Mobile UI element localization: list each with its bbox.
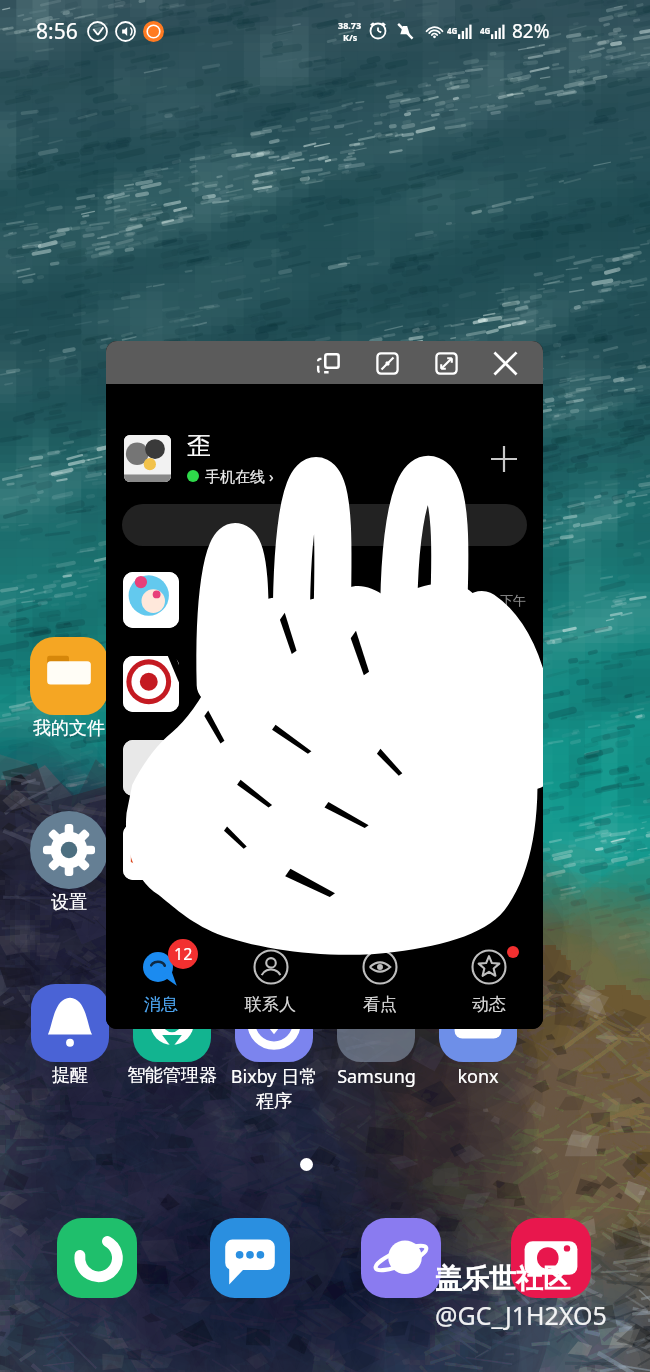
staticText: 设置 (51, 891, 87, 914)
button[interactable]: 智能管理器 (125, 984, 219, 1087)
button[interactable] (123, 726, 526, 810)
staticText: 看点 (363, 994, 397, 1015)
button[interactable]: 设置 (22, 811, 116, 914)
staticText: 联系人 (245, 994, 296, 1015)
button[interactable]: 昨天 (123, 642, 526, 726)
staticText: 动态 (472, 994, 506, 1015)
button[interactable]: 我的文件 (22, 637, 116, 740)
button[interactable]: konx (431, 984, 525, 1089)
button[interactable]: 联系人 (216, 944, 325, 1015)
button[interactable]: 动态 (434, 944, 543, 1015)
button[interactable]: Close (489, 347, 521, 379)
staticText: konx (457, 1064, 499, 1089)
staticText: 盖乐世社区 (435, 1262, 570, 1296)
staticText: Samsung (337, 1064, 416, 1089)
button[interactable]: Add (481, 440, 527, 478)
staticText: 下午 (500, 592, 526, 608)
staticText: 82% (512, 18, 550, 44)
button[interactable]: Internet (361, 1218, 441, 1298)
button[interactable]: Maximize (430, 347, 462, 379)
staticText: 手机在线 › (205, 466, 274, 486)
staticText: 4G (447, 25, 458, 36)
staticText: 我的文件 (33, 717, 105, 740)
staticText: 38.73 (338, 19, 362, 31)
button[interactable]: 16:23 (123, 810, 526, 894)
button[interactable]: Minimize (371, 347, 403, 379)
button[interactable]: Bixby 日常程序 (227, 984, 321, 1112)
button[interactable]: 提醒 (23, 984, 117, 1087)
staticText: 提醒 (52, 1064, 88, 1087)
staticText: 消息 (144, 994, 178, 1015)
staticText: K/s (343, 31, 358, 43)
staticText: 歪 (187, 431, 211, 461)
button[interactable]: Phone (57, 1218, 137, 1298)
staticText: 12 (174, 943, 193, 965)
button[interactable]: 搜索 (122, 504, 527, 546)
button[interactable]: 下午 (123, 558, 526, 642)
button[interactable]: 看点 (325, 944, 434, 1015)
button[interactable]: 歪 (124, 431, 527, 486)
button[interactable]: Pop up view (312, 347, 344, 379)
staticText: 8:56 (36, 17, 78, 46)
button[interactable]: Community (511, 1218, 591, 1298)
button[interactable]: Samsung (329, 984, 423, 1089)
button[interactable]: 12 (106, 944, 216, 1015)
staticText: Bixby 日常程序 (227, 1064, 321, 1112)
staticText: @GC_J1H2XO5 (435, 1298, 607, 1332)
staticText: 智能管理器 (127, 1064, 217, 1087)
button[interactable]: Messages (210, 1218, 290, 1298)
staticText: 4G (480, 25, 491, 36)
